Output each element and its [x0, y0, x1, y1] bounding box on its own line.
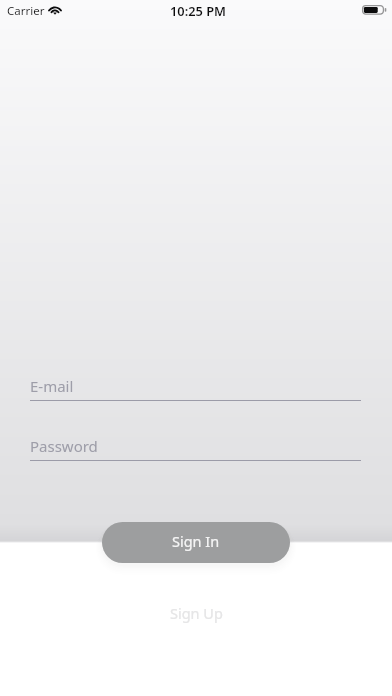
- button[interactable]: Sign Up: [0, 600, 392, 626]
- button[interactable]: Sign In: [102, 522, 290, 563]
- staticText: Carrier: [7, 3, 45, 19]
- staticText: Sign In: [172, 531, 220, 551]
- other: Wi-Fi: [48, 4, 62, 18]
- staticText: E-mail: [30, 376, 74, 396]
- button[interactable]: E-mail: [30, 376, 361, 401]
- staticText: Password: [30, 436, 98, 456]
- staticText: Sign Up: [170, 603, 223, 623]
- staticText: 10:25 PM: [170, 2, 226, 19]
- other: Battery: [362, 4, 387, 18]
- button[interactable]: Password: [30, 436, 361, 461]
